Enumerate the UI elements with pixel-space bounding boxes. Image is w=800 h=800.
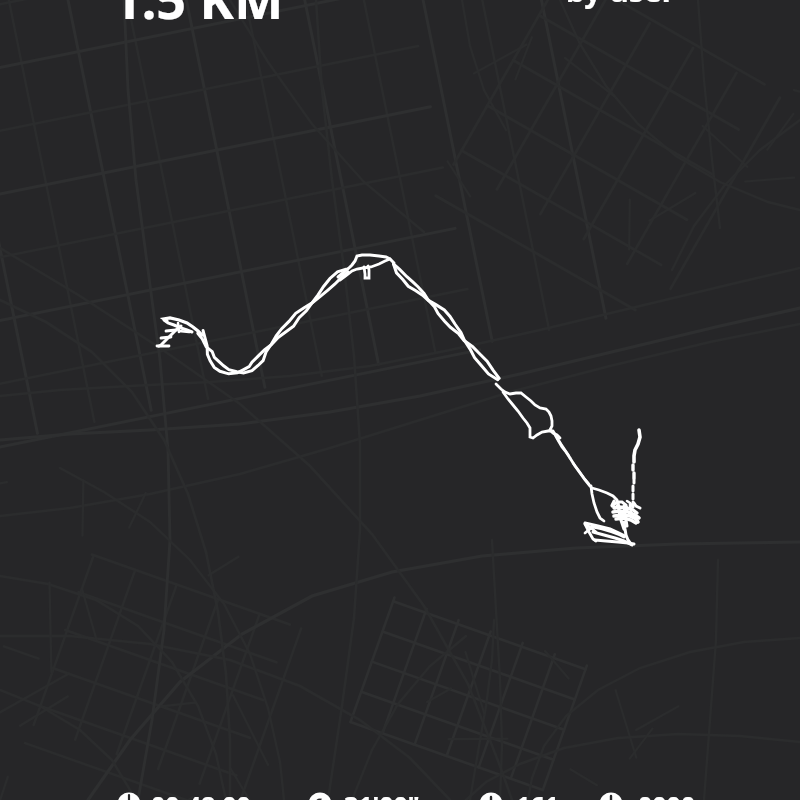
staticText: 00:48:00	[151, 788, 251, 800]
button[interactable]: Average pace	[305, 789, 454, 800]
button[interactable]: Calories	[596, 789, 748, 800]
staticText: 0000	[638, 788, 696, 800]
button[interactable]: Activity route map	[0, 0, 800, 800]
staticText: 31'00"	[344, 788, 420, 800]
staticText: 1.5 KM	[112, 0, 284, 34]
button[interactable]: 1.5 KM	[112, 0, 292, 43]
staticText: 161	[516, 788, 559, 800]
button[interactable]: Duration	[114, 789, 261, 800]
staticText: by user	[566, 0, 676, 11]
button[interactable]: Average heart rate	[476, 789, 626, 800]
button[interactable]: by user	[566, 0, 690, 18]
